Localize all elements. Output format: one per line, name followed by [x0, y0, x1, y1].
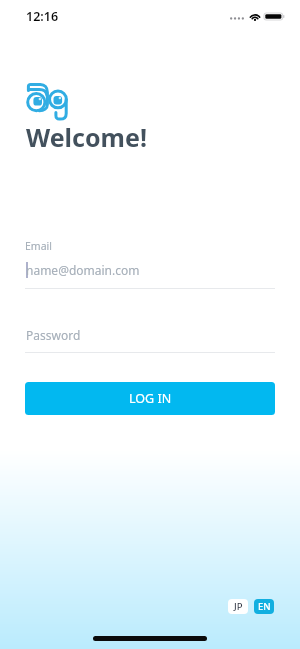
staticText: JP — [234, 600, 243, 613]
staticText: 12:16 — [26, 8, 59, 25]
button[interactable]: JP — [228, 599, 248, 614]
staticText: LOG IN — [129, 390, 172, 407]
staticText: name@domain.com — [26, 262, 140, 278]
button[interactable]: Email — [25, 236, 275, 289]
staticText: Welcome! — [26, 120, 147, 154]
button[interactable]: EN — [254, 599, 274, 614]
staticText: EN — [258, 600, 271, 613]
button[interactable]: LOG IN — [25, 382, 275, 415]
button[interactable]: Password — [25, 320, 275, 353]
staticText: Email — [25, 239, 52, 253]
staticText: Password — [26, 327, 81, 343]
